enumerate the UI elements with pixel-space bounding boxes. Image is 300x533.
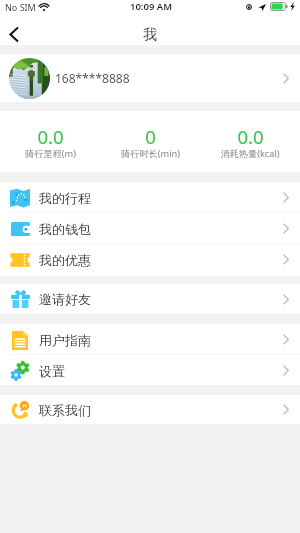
staticText: 我 (143, 26, 157, 44)
staticText: 我的优惠 (39, 252, 91, 268)
staticText: 10:09 AM (130, 0, 173, 13)
staticText: 0.0 (37, 124, 64, 149)
button[interactable]: 0 (100, 111, 200, 172)
button[interactable]: 设置 (0, 355, 300, 386)
staticText: 我的钱包 (39, 221, 91, 237)
button[interactable]: 168****8888 (0, 54, 300, 102)
button[interactable]: 联系我们 (0, 395, 300, 424)
staticText: 设置 (39, 363, 65, 379)
staticText: 168****8888 (55, 70, 130, 86)
button[interactable]: 邀请好友 (0, 284, 300, 314)
button[interactable]: Back (0, 20, 28, 45)
staticText: 用户指南 (39, 332, 91, 348)
button[interactable]: 我的优惠 (0, 244, 300, 275)
staticText: No SIM (5, 1, 36, 13)
staticText: 骑行里程(m) (25, 147, 76, 160)
button[interactable]: 0.0 (200, 111, 300, 172)
staticText: 联系我们 (39, 402, 91, 418)
button[interactable]: 我的钱包 (0, 213, 300, 244)
staticText: 邀请好友 (39, 291, 91, 307)
button[interactable]: 我的行程 (0, 182, 300, 213)
button[interactable]: 用户指南 (0, 324, 300, 355)
button[interactable]: 0.0 (0, 111, 100, 172)
staticText: 消耗热量(kcal) (220, 147, 280, 160)
staticText: 0.0 (237, 124, 264, 149)
staticText: 0 (145, 124, 156, 149)
staticText: 我的行程 (39, 190, 91, 206)
staticText: 骑行时长(min) (121, 147, 180, 160)
